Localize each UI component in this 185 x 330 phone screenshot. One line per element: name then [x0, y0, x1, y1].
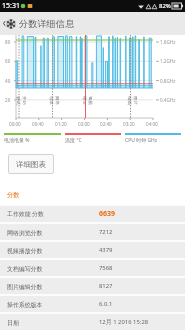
staticText: 0.4GHz — [160, 97, 176, 103]
staticText: 02:00 — [78, 121, 90, 127]
button[interactable]: 日期 — [0, 314, 185, 330]
staticText: 网络浏览分数 — [7, 229, 99, 236]
staticText: 6.0.1 — [99, 300, 113, 308]
staticText: 操作系统版本 — [7, 301, 99, 308]
staticText: 03:20 — [123, 121, 135, 127]
button[interactable]: 文档编写分数 — [0, 260, 185, 276]
staticText: 00:40 — [32, 121, 44, 127]
staticText: 12月 1 2016 15:28 — [99, 318, 149, 326]
staticText: 82% — [159, 2, 171, 10]
button[interactable]: 图片编辑分数 — [0, 278, 185, 294]
staticText: 视频播放分数 — [7, 247, 99, 254]
staticText: 温度 °C — [65, 137, 82, 144]
staticText: 02:40 — [100, 121, 112, 127]
staticText: 文档编写分数 — [7, 265, 99, 272]
button[interactable]: 视频播放分数 — [0, 242, 185, 258]
staticText: 8127 — [99, 282, 113, 290]
staticText: 1.2GHz — [160, 58, 176, 64]
staticText: 0.8GHz — [160, 78, 176, 84]
button[interactable]: Back — [0, 12, 7, 35]
staticText: 1.6GHz — [160, 39, 176, 45]
staticText: 详细图表 — [16, 160, 46, 169]
staticText: 01:20 — [55, 121, 67, 127]
staticText: 图片编辑 — [126, 96, 138, 108]
staticText: 工作效能 分数 — [7, 210, 99, 218]
staticText: 日期 — [7, 319, 99, 326]
staticText: 电池电量 % — [4, 137, 30, 144]
staticText: 分数详细信息 — [19, 18, 75, 30]
staticText: 图片编辑分数 — [7, 283, 99, 290]
staticText: 40 — [5, 78, 11, 84]
staticText: 20 — [5, 97, 11, 103]
staticText: 60 — [5, 58, 11, 64]
staticText: 分数 — [7, 191, 20, 199]
staticText: 15:31 — [2, 1, 20, 11]
staticText: CPU 时钟 GHz — [125, 137, 158, 144]
staticText: 网络浏览 — [48, 96, 60, 108]
staticText: 80 — [5, 39, 11, 45]
button[interactable]: 网络浏览分数 — [0, 224, 185, 240]
staticText: 6639 — [99, 209, 116, 219]
staticText: 7212 — [99, 228, 113, 236]
staticText: 04:00 — [146, 121, 158, 127]
staticText: 00:00 — [9, 121, 21, 127]
button[interactable]: 详细图表 — [8, 154, 54, 174]
staticText: 4379 — [99, 246, 113, 254]
staticText: 开始测试 — [15, 96, 27, 108]
button[interactable]: 工作效能 分数 — [0, 206, 185, 222]
staticText: 视频播放 — [81, 96, 93, 108]
staticText: 7568 — [99, 264, 113, 272]
button[interactable]: 操作系统版本 — [0, 296, 185, 312]
